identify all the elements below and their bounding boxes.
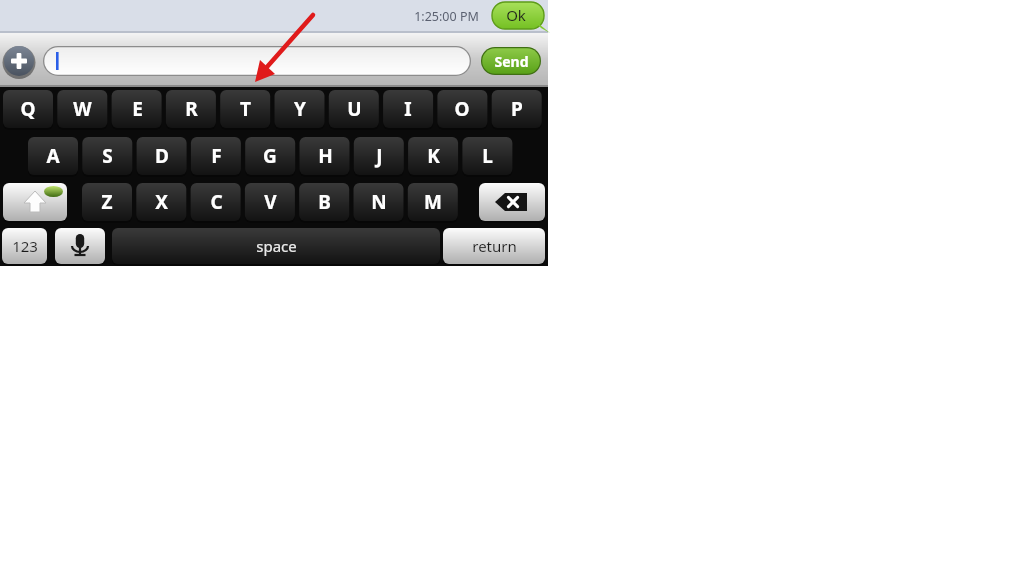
button[interactable]: Space xyxy=(112,228,440,264)
staticText: E xyxy=(132,96,143,122)
button[interactable]: Dictation xyxy=(55,228,105,264)
button[interactable]: X xyxy=(136,183,186,221)
button[interactable]: R xyxy=(166,90,216,128)
button[interactable]: P xyxy=(492,90,542,128)
button[interactable]: Numbers xyxy=(2,228,47,264)
button[interactable]: L xyxy=(462,137,512,175)
staticText: Ok xyxy=(506,5,526,25)
button[interactable]: V xyxy=(245,183,295,221)
button[interactable]: K xyxy=(408,137,458,175)
staticText: A xyxy=(46,143,60,169)
staticText: R xyxy=(185,96,198,122)
staticText: 123 xyxy=(12,236,38,256)
button[interactable]: Y xyxy=(275,90,325,128)
staticText: S xyxy=(102,143,113,169)
staticText: L xyxy=(482,143,493,169)
button[interactable]: U xyxy=(329,90,379,128)
staticText: J xyxy=(376,143,383,169)
staticText: C xyxy=(210,189,223,215)
button[interactable]: I xyxy=(383,90,433,128)
staticText: B xyxy=(318,189,331,215)
staticText: N xyxy=(371,189,387,215)
staticText: P xyxy=(511,96,523,122)
staticText: W xyxy=(73,96,92,122)
staticText: return xyxy=(472,236,517,256)
button[interactable]: Send xyxy=(481,47,541,75)
button[interactable]: Message input xyxy=(43,46,471,76)
button[interactable]: Return xyxy=(443,228,545,264)
staticText: K xyxy=(427,143,440,169)
button[interactable]: D xyxy=(137,137,187,175)
staticText: T xyxy=(240,96,251,122)
button[interactable]: O xyxy=(437,90,487,128)
staticText: Y xyxy=(294,96,306,122)
staticText: H xyxy=(318,143,333,169)
button[interactable]: E xyxy=(112,90,162,128)
button[interactable]: N xyxy=(354,183,404,221)
staticText: 1:25:00 PM xyxy=(414,8,479,25)
staticText: X xyxy=(155,189,168,215)
staticText: F xyxy=(211,143,222,169)
staticText: Q xyxy=(20,96,36,122)
button[interactable]: F xyxy=(191,137,241,175)
button[interactable]: W xyxy=(57,90,107,128)
button[interactable]: A xyxy=(28,137,78,175)
button[interactable]: Q xyxy=(3,90,53,128)
staticText: G xyxy=(263,143,277,169)
button[interactable]: C xyxy=(191,183,241,221)
button[interactable]: S xyxy=(82,137,132,175)
button[interactable]: H xyxy=(300,137,350,175)
button[interactable]: Add attachment xyxy=(4,46,34,76)
button[interactable]: G xyxy=(245,137,295,175)
button[interactable]: T xyxy=(220,90,270,128)
staticText: V xyxy=(264,189,277,215)
button[interactable]: J xyxy=(354,137,404,175)
staticText: Send xyxy=(494,52,529,71)
button[interactable]: B xyxy=(299,183,349,221)
staticText: O xyxy=(454,96,470,122)
button[interactable]: Shift xyxy=(3,183,67,221)
staticText: D xyxy=(155,143,169,169)
staticText: U xyxy=(347,96,362,122)
button[interactable]: M xyxy=(408,183,458,221)
staticText: Z xyxy=(101,189,113,215)
staticText: space xyxy=(256,236,297,256)
staticText: M xyxy=(424,189,442,215)
staticText: I xyxy=(404,96,412,122)
button[interactable]: Backspace xyxy=(479,183,545,221)
button[interactable]: Z xyxy=(82,183,132,221)
